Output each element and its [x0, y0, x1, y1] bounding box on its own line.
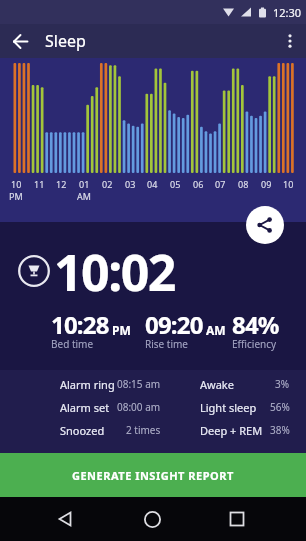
staticText: 03	[125, 178, 136, 190]
staticText: Alarm ring	[60, 377, 115, 392]
staticText: PM	[9, 190, 23, 202]
staticText: 08:00 am	[117, 400, 161, 414]
staticText: 3%	[275, 377, 290, 391]
staticText: 38%	[270, 423, 290, 437]
button[interactable]	[0, 24, 40, 58]
staticText: 12	[56, 178, 67, 190]
staticText: Awake	[200, 377, 234, 392]
staticText: Efficiency	[232, 337, 277, 351]
staticText: 12:30	[273, 5, 302, 20]
staticText: 11	[34, 178, 45, 190]
staticText: Snoozed	[60, 423, 105, 438]
staticText: 10:28	[51, 308, 109, 341]
staticText: 09:20	[145, 308, 203, 341]
staticText: Deep + REM	[200, 423, 263, 438]
staticText: 08:15 am	[117, 377, 161, 391]
staticText: 56%	[270, 400, 290, 414]
staticText: 06	[193, 178, 204, 190]
button[interactable]	[246, 206, 284, 244]
staticText: 05	[170, 178, 181, 190]
staticText: 01	[79, 178, 90, 190]
staticText: Bed time	[51, 337, 94, 351]
staticText: 04	[147, 178, 158, 190]
staticText: Light sleep	[200, 400, 257, 415]
button[interactable]: GENERATE INSIGHT REPORT	[0, 453, 306, 497]
staticText: 2 times	[126, 423, 161, 437]
staticText: 10	[11, 178, 22, 190]
staticText: 02	[102, 178, 113, 190]
staticText: GENERATE INSIGHT REPORT	[72, 468, 234, 483]
staticText: Rise time	[145, 337, 189, 351]
button[interactable]	[43, 497, 87, 541]
staticText: Alarm set	[60, 400, 110, 415]
staticText: 07	[215, 178, 226, 190]
button[interactable]	[274, 24, 306, 58]
staticText: 09	[261, 178, 272, 190]
staticText: AM	[206, 322, 226, 338]
staticText: 84%	[232, 308, 279, 341]
button[interactable]	[130, 497, 174, 541]
staticText: AM	[77, 190, 91, 202]
staticText: 08	[238, 178, 249, 190]
button[interactable]	[215, 497, 259, 541]
staticText: 10	[283, 178, 294, 190]
staticText: 10:02	[54, 238, 175, 306]
staticText: PM	[112, 322, 131, 338]
staticText: Sleep	[45, 30, 86, 52]
